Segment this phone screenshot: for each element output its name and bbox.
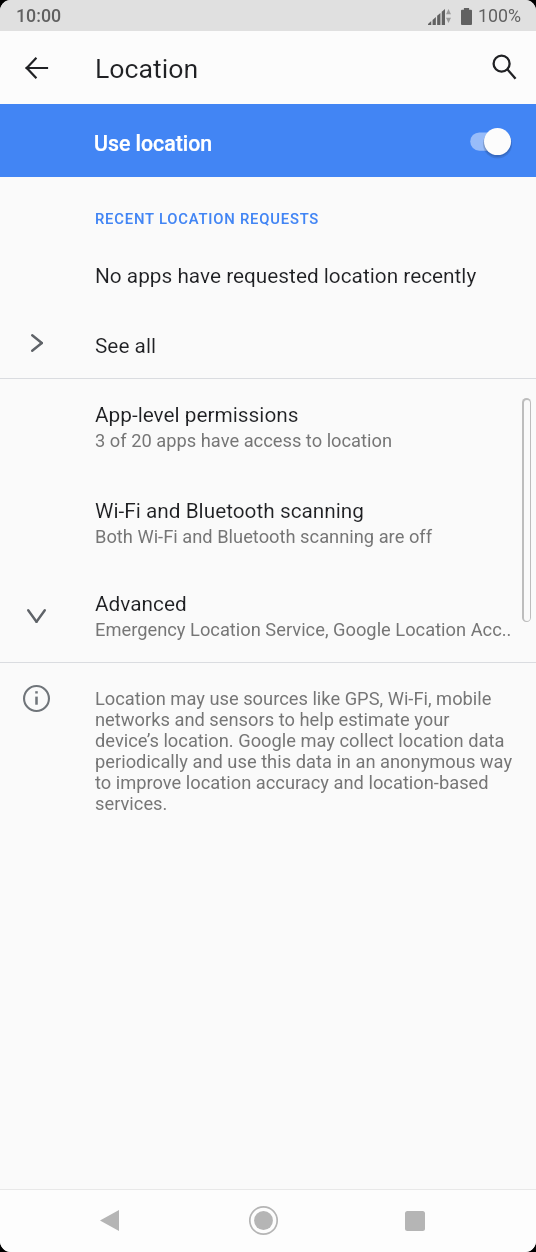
button[interactable]: Wi-Fi and Bluetooth scanning xyxy=(0,488,536,570)
staticText: Wi-Fi and Bluetooth scanning xyxy=(95,499,365,523)
button[interactable]: See all xyxy=(0,316,536,376)
staticText: Both Wi-Fi and Bluetooth scanning are of… xyxy=(95,526,433,547)
button[interactable]: Recent apps xyxy=(369,1190,461,1252)
button[interactable]: App-level permissions xyxy=(0,392,536,474)
staticText: 100% xyxy=(478,5,522,26)
button[interactable]: No apps have requested location recently xyxy=(0,250,536,302)
staticText: No apps have requested location recently xyxy=(95,264,477,288)
staticText: Use location xyxy=(94,131,213,156)
staticText: 10:00 xyxy=(16,5,62,26)
button[interactable]: Advanced xyxy=(0,581,536,662)
button[interactable]: Back xyxy=(63,1189,155,1251)
staticText: Emergency Location Service, Google Locat… xyxy=(95,619,512,640)
staticText: Location xyxy=(95,53,199,84)
staticText: See all xyxy=(95,334,156,358)
button[interactable]: Use location xyxy=(0,104,536,177)
staticText: RECENT LOCATION REQUESTS xyxy=(95,210,320,227)
staticText: 3 of 20 apps have access to location xyxy=(95,430,393,451)
button[interactable]: Home xyxy=(217,1189,309,1251)
staticText: Advanced xyxy=(95,592,187,616)
staticText: App-level permissions xyxy=(95,403,299,427)
button[interactable]: Navigate up xyxy=(12,44,60,92)
staticText: Location may use sources like GPS, Wi-Fi… xyxy=(95,688,515,814)
button[interactable]: Search xyxy=(480,43,528,91)
